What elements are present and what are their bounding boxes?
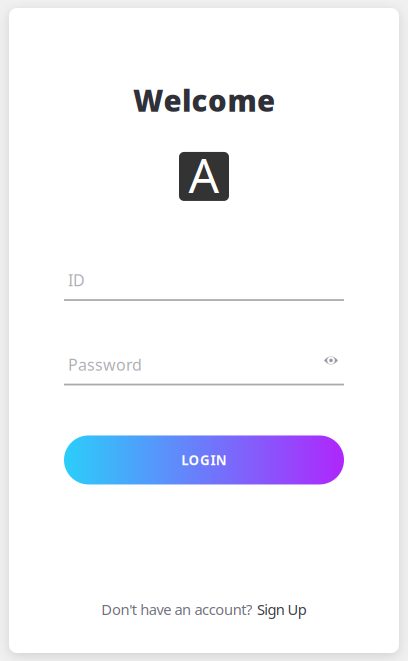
staticText: Password: [68, 354, 142, 375]
staticText: Don't have an account?: [101, 599, 252, 619]
staticText: LOGIN: [181, 451, 227, 469]
staticText: Sign Up: [257, 599, 307, 619]
button[interactable]: Show password: [324, 359, 344, 369]
button[interactable]: Sign Up: [257, 599, 307, 619]
staticText: Welcome: [133, 81, 275, 120]
staticText: A: [188, 143, 219, 206]
staticText: ID: [68, 269, 85, 290]
button[interactable]: LOGIN: [64, 435, 344, 484]
